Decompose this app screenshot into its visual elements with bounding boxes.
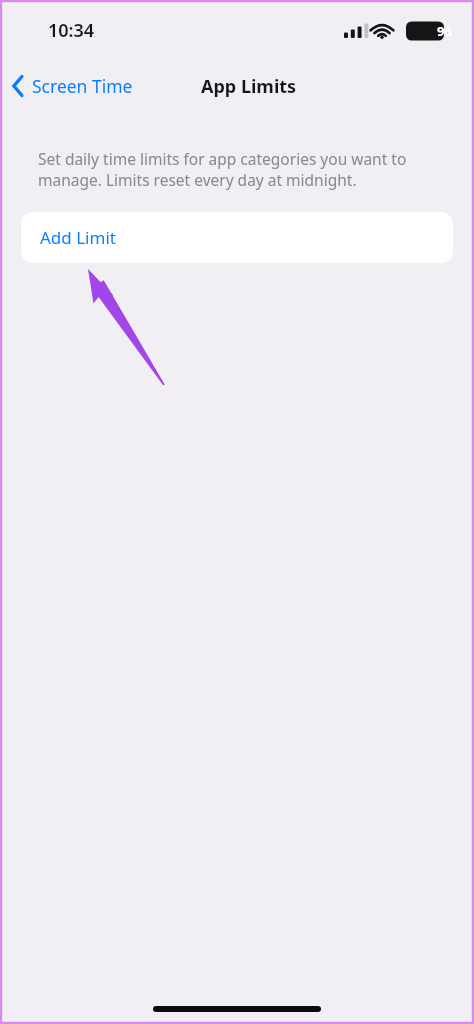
staticText: Add Limit [40, 226, 116, 249]
button[interactable]: Add Limit [21, 212, 453, 263]
staticText: 10:34 [48, 18, 95, 43]
staticText: Screen Time [32, 74, 133, 98]
staticText: 96 [437, 22, 452, 40]
button[interactable]: Screen Time [0, 62, 160, 110]
staticText: Set daily time limits for app categories… [38, 148, 434, 191]
staticText: App Limits [201, 74, 297, 99]
